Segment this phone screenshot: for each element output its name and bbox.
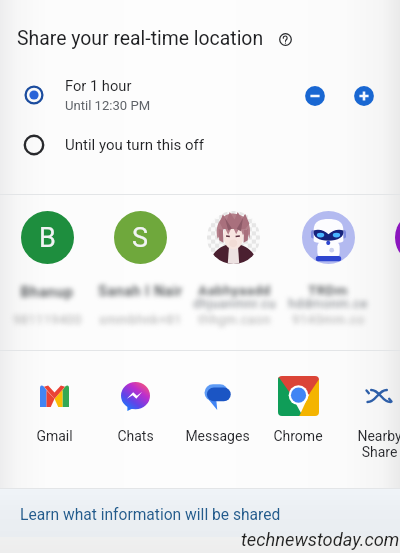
staticText: S [132,222,149,254]
button[interactable]: Increase duration [350,82,378,110]
staticText: Aabhyaadd [198,283,271,299]
button[interactable]: Chats [95,366,175,466]
button[interactable] [395,211,400,264]
staticText: Bhanup [20,283,74,300]
button[interactable]: Chrome [258,366,338,466]
staticText: For 1 hour [65,77,132,94]
staticText: Chrome [273,428,323,444]
staticText: 981119400 [13,312,82,327]
staticText: 9140mm.co [292,312,365,327]
button[interactable]: S [114,211,167,264]
staticText: TRDm [308,283,348,299]
button[interactable]: Help [275,29,295,49]
button[interactable]: For 1 hour [0,71,400,119]
button[interactable] [302,211,355,264]
staticText: Until you turn this off [65,136,204,154]
button[interactable]: Nearby Share [339,366,400,466]
button[interactable] [207,211,260,264]
staticText: dhjuanmnr.cu [193,296,276,311]
button[interactable]: Gmail [14,366,94,466]
staticText: Learn what information will be shared [20,506,281,524]
staticText: Sanah I Nair [98,283,183,300]
button[interactable]: Learn what information will be shared [0,489,400,536]
staticText: Chats [117,428,154,444]
staticText: Share your real-time location [17,27,264,50]
button[interactable]: B [21,211,74,264]
staticText: B [39,222,56,254]
staticText: hddmonm.ce [288,296,368,311]
button[interactable]: Messages [177,366,257,466]
staticText: smmbhnk+81 [99,312,182,327]
button[interactable]: Until you turn this off [0,125,400,165]
staticText: Until 12:30 PM [65,98,151,113]
staticText: Gmail [36,428,73,444]
staticText: thhgm.caon [198,312,271,327]
staticText: technewstoday.com [241,529,400,550]
staticText: Messages [185,428,250,444]
staticText: Nearby Share [357,428,400,460]
button[interactable]: Decrease duration [301,82,329,110]
